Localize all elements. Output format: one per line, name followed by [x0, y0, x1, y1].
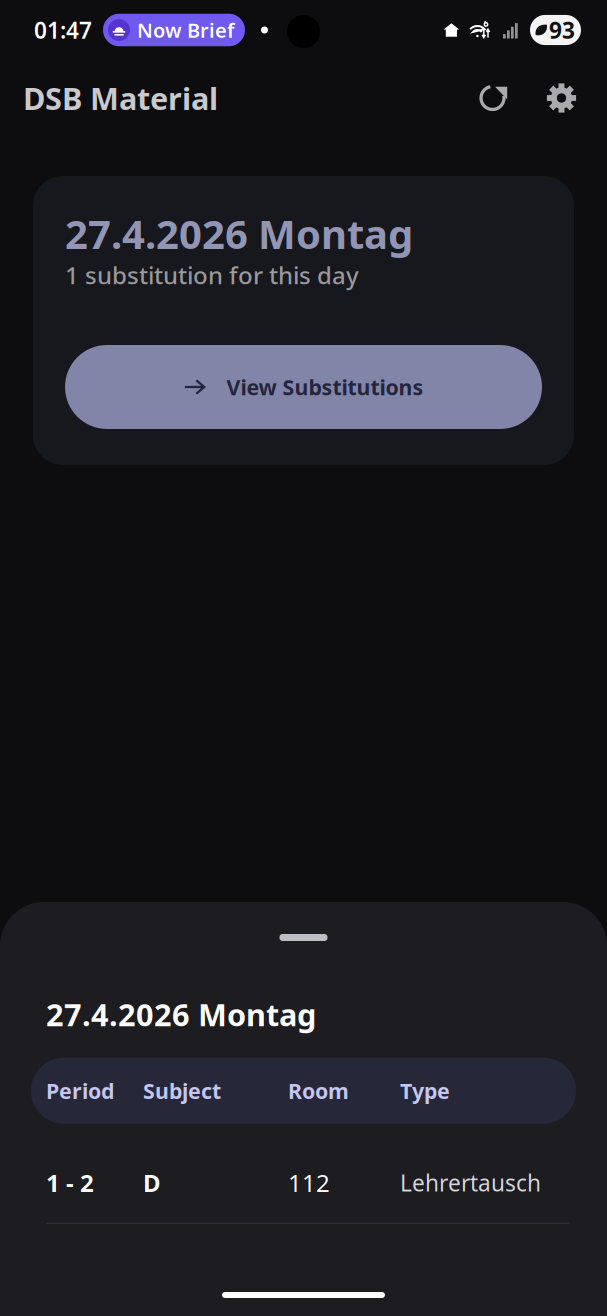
- staticText: 27.4.2026 Montag: [65, 207, 413, 260]
- staticText: DSB Material: [23, 78, 218, 118]
- button[interactable]: Refresh: [465, 72, 520, 123]
- staticText: 1 - 2: [46, 1167, 94, 1199]
- staticText: 27.4.2026 Montag: [46, 994, 316, 1035]
- staticText: View Substitutions: [226, 373, 423, 401]
- staticText: 01:47: [34, 15, 92, 45]
- staticText: Subject: [143, 1077, 221, 1105]
- staticText: Type: [400, 1077, 450, 1105]
- button[interactable]: Settings: [534, 72, 589, 123]
- staticText: Now Brief: [137, 17, 234, 43]
- staticText: Lehrertausch: [400, 1168, 541, 1198]
- staticText: D: [143, 1167, 161, 1199]
- staticText: 1 substitution for this day: [65, 259, 359, 291]
- staticText: 112: [288, 1167, 330, 1199]
- staticText: 93: [549, 15, 575, 45]
- button[interactable]: View Substitutions: [65, 345, 542, 429]
- staticText: Room: [288, 1077, 349, 1105]
- staticText: Period: [46, 1077, 114, 1105]
